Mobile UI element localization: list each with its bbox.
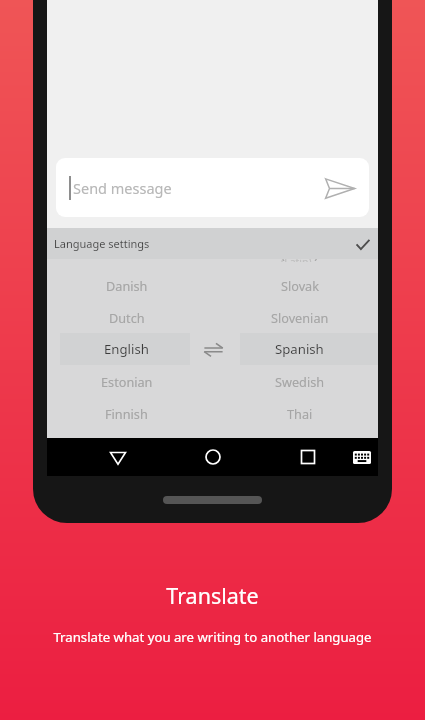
staticText: Estonian [101, 373, 153, 390]
button[interactable]: Thai [228, 397, 371, 429]
button[interactable]: Estonian [55, 365, 198, 397]
staticText: (Latin) [281, 259, 312, 262]
staticText: Dutch [109, 309, 145, 326]
button[interactable]: Send [323, 171, 357, 205]
staticText: Slovak [281, 277, 319, 294]
button[interactable]: Send message [56, 158, 369, 217]
button[interactable]: Language settings [47, 228, 378, 259]
staticText: Translate what you are writing to anothe… [0, 628, 425, 646]
staticText: Swedish [275, 373, 325, 390]
button[interactable]: Dutch [55, 301, 198, 333]
staticText: Danish [106, 277, 148, 294]
button[interactable]: (Latin) [228, 259, 371, 269]
staticText: (Latin) [281, 259, 319, 262]
staticText: Slovenian [271, 309, 329, 326]
button[interactable]: Slovenian [228, 301, 371, 333]
staticText: Spanish [275, 340, 324, 358]
staticText: Finnish [105, 405, 148, 422]
button[interactable]: Keyboard [343, 438, 381, 476]
button[interactable]: Back [99, 438, 137, 476]
button[interactable]: Home [194, 438, 232, 476]
button[interactable]: Finnish [55, 397, 198, 429]
button[interactable]: English [55, 333, 198, 365]
button[interactable]: Swap languages [200, 337, 226, 363]
staticText: Send message [73, 178, 172, 198]
button[interactable]: Apply language settings [350, 231, 376, 257]
button[interactable]: Spanish [228, 333, 371, 365]
button[interactable]: Danish [55, 269, 198, 301]
button[interactable]: Swedish [228, 365, 371, 397]
staticText: Language settings [54, 236, 150, 251]
staticText: Translate [0, 581, 425, 610]
staticText: Thai [287, 405, 313, 422]
button[interactable]: Recent apps [289, 438, 327, 476]
staticText: English [104, 340, 149, 358]
button[interactable]: Slovak [228, 269, 371, 301]
